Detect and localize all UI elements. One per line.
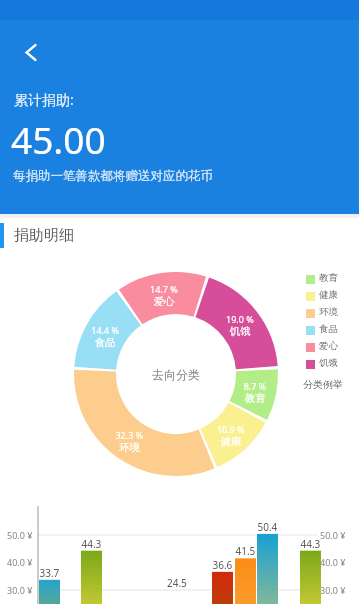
button[interactable]: Back [14, 36, 48, 70]
button[interactable] [0, 220, 359, 256]
